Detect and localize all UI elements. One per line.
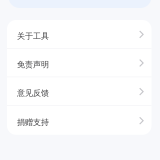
button[interactable]: 免责声明 [7,49,151,77]
staticText: 免责声明 [17,60,49,69]
staticText: 意见反馈 [17,88,49,98]
staticText: 关于工具 [17,31,49,41]
staticText: 捐赠支持 [17,117,49,127]
button[interactable]: 捐赠支持 [7,106,151,135]
button[interactable]: 意见反馈 [7,77,151,106]
button[interactable]: 关于工具 [7,20,151,49]
